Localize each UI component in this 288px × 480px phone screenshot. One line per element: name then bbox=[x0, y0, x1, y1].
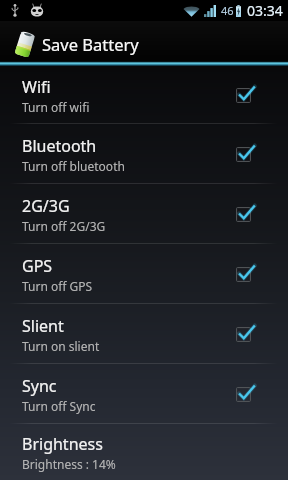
button[interactable]: 2G/3G bbox=[0, 184, 288, 243]
staticText: Turn off GPS bbox=[22, 278, 93, 294]
staticText: Turn off wifi bbox=[22, 99, 90, 115]
staticText: Turn off bluetooth bbox=[22, 158, 125, 174]
staticText: Brightness bbox=[22, 433, 103, 455]
staticText: Turn off Sync bbox=[22, 398, 96, 414]
staticText: Save Battery bbox=[42, 33, 139, 55]
button[interactable]: Sync bbox=[0, 364, 288, 423]
staticText: 03:34 bbox=[247, 1, 283, 20]
button[interactable]: Wifi bbox=[0, 66, 288, 123]
staticText: Turn on slient bbox=[22, 338, 100, 354]
button[interactable]: Toggle Slient bbox=[232, 320, 258, 346]
staticText: Brightness : 14% bbox=[22, 456, 116, 472]
staticText: 2G/3G bbox=[22, 195, 70, 217]
staticText: Wifi bbox=[22, 76, 51, 98]
button[interactable]: Toggle 2G/3G bbox=[232, 200, 258, 226]
button[interactable]: Toggle Wifi bbox=[232, 81, 258, 107]
button[interactable]: GPS bbox=[0, 244, 288, 303]
staticText: GPS bbox=[22, 255, 53, 277]
staticText: Sync bbox=[22, 375, 57, 397]
button[interactable]: Bluetooth bbox=[0, 124, 288, 183]
staticText: Bluetooth bbox=[22, 135, 97, 157]
button[interactable]: Toggle Sync bbox=[232, 380, 258, 406]
button[interactable]: Brightness bbox=[0, 424, 288, 480]
button[interactable]: Slient bbox=[0, 304, 288, 363]
button[interactable]: Toggle Bluetooth bbox=[232, 140, 258, 166]
button[interactable]: Toggle GPS bbox=[232, 260, 258, 286]
button[interactable]: Save Battery bbox=[0, 21, 288, 64]
staticText: 46 bbox=[221, 3, 234, 18]
staticText: Slient bbox=[22, 315, 64, 337]
staticText: Turn off 2G/3G bbox=[22, 218, 106, 234]
